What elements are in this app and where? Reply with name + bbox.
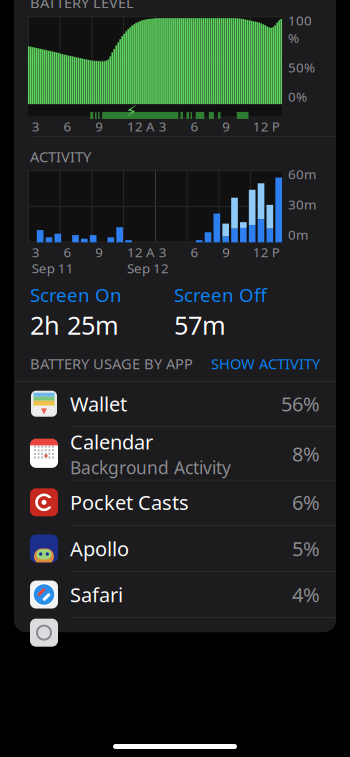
staticText: 56% [281, 390, 320, 417]
button[interactable]: Apollo [14, 526, 336, 572]
staticText: Apollo [70, 535, 129, 562]
staticText: SHOW ACTIVITY [211, 354, 320, 373]
staticText: Wallet [70, 390, 127, 417]
staticText: 6% [292, 489, 320, 516]
staticText: 12 A [127, 243, 155, 261]
button[interactable]: SHOW ACTIVITY [211, 354, 320, 373]
staticText: 3 [159, 243, 167, 261]
staticText: 100% [288, 11, 312, 47]
staticText: 5% [292, 535, 320, 562]
staticText: BATTERY LEVEL [30, 0, 134, 12]
staticText: 9 [222, 117, 230, 135]
staticText: 50% [288, 58, 315, 76]
staticText: 60m [288, 165, 316, 183]
button[interactable]: Pocket Casts [14, 480, 336, 526]
staticText: 12 A [127, 117, 155, 135]
staticText: Screen On [30, 282, 122, 307]
staticText: 6 [64, 243, 72, 261]
staticText: 0% [288, 88, 307, 105]
staticText: 6 [64, 117, 72, 135]
staticText: 3 [159, 117, 167, 135]
staticText: 9 [95, 117, 103, 135]
staticText: 12 P [253, 117, 280, 135]
staticText: Calendar [70, 429, 153, 455]
staticText: Safari [70, 581, 123, 608]
staticText: ACTIVITY [30, 147, 91, 166]
staticText: 3 [32, 117, 40, 135]
staticText: 12 P [253, 243, 280, 261]
staticText: Screen Off [174, 282, 267, 307]
staticText: 57m [174, 308, 226, 342]
staticText: 4% [292, 581, 320, 608]
staticText: Sep 11 [32, 259, 74, 277]
button[interactable]: Safari [14, 572, 336, 619]
staticText: 9 [95, 243, 103, 261]
staticText: BATTERY USAGE BY APP [30, 354, 193, 373]
staticText: Sep 12 [127, 259, 169, 277]
staticText: 3 [32, 243, 40, 261]
button[interactable]: ▾ [14, 382, 336, 428]
staticText: 8% [292, 441, 320, 467]
staticText: 6 [191, 243, 199, 261]
staticText: ⚡︎ [126, 102, 137, 121]
staticText: 2h 25m [30, 308, 119, 342]
staticText: 0m [288, 226, 308, 243]
staticText: ▾ [41, 403, 47, 417]
staticText: 9 [222, 243, 230, 261]
staticText: Pocket Casts [70, 489, 189, 516]
staticText: Background Activity [70, 456, 231, 479]
button[interactable]: Calendar [14, 428, 336, 480]
staticText: 6 [191, 117, 199, 135]
staticText: 30m [288, 195, 316, 213]
